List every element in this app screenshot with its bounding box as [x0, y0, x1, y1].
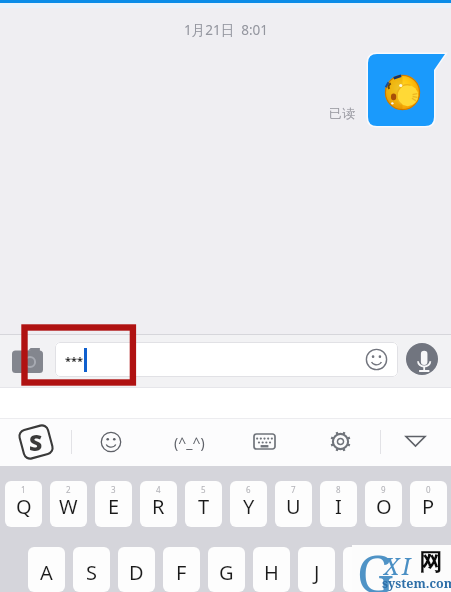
staticText: P	[422, 493, 435, 520]
button[interactable]: A	[28, 547, 65, 592]
staticText: K	[355, 559, 368, 586]
button[interactable]: Voice message	[406, 343, 438, 375]
staticText: J	[314, 559, 320, 586]
staticText: 9	[381, 484, 386, 495]
button[interactable]: 3	[95, 481, 132, 527]
staticText: A	[40, 559, 53, 586]
button[interactable]: L	[388, 547, 425, 592]
button[interactable]: Kaomoji	[164, 432, 214, 452]
button[interactable]: Settings	[329, 430, 352, 453]
staticText: 4	[156, 484, 161, 495]
button[interactable]: Emoji	[100, 431, 122, 453]
staticText: R	[152, 493, 165, 520]
button[interactable]: 8	[320, 481, 357, 527]
staticText: 已读	[329, 105, 355, 121]
staticText: system.com	[382, 575, 451, 592]
staticText: H	[264, 559, 279, 586]
staticText: W	[59, 493, 78, 520]
button[interactable]: 7	[275, 481, 312, 527]
button[interactable]: Sogou input	[20, 426, 52, 458]
staticText: F	[176, 559, 187, 586]
button[interactable]: Emoji	[365, 348, 388, 371]
staticText: Q	[16, 493, 32, 520]
staticText: 6	[246, 484, 251, 495]
staticText: 7	[291, 484, 296, 495]
staticText: G	[357, 538, 394, 592]
staticText: 5	[201, 484, 206, 495]
button[interactable]: 1	[5, 481, 42, 527]
button[interactable]: F	[163, 547, 200, 592]
staticText: U	[286, 493, 301, 520]
staticText: 1	[21, 484, 26, 495]
button[interactable]: Keyboard	[253, 433, 276, 450]
button[interactable]: K	[343, 547, 380, 592]
button[interactable]: J	[298, 547, 335, 592]
staticText: E	[108, 493, 120, 520]
button[interactable]: D	[118, 547, 155, 592]
staticText: G	[219, 559, 234, 586]
staticText: 1月21日 8:01	[184, 21, 268, 39]
staticText: I	[402, 550, 411, 581]
staticText: X	[384, 550, 400, 581]
staticText: 网	[419, 548, 442, 577]
button[interactable]: Sticker message	[368, 54, 445, 126]
staticText: D	[129, 559, 144, 586]
staticText: 3	[111, 484, 116, 495]
button[interactable]: Hide keyboard	[405, 434, 426, 448]
button[interactable]: 2	[50, 481, 87, 527]
button[interactable]: 4	[140, 481, 177, 527]
staticText: I	[335, 493, 342, 520]
button[interactable]: G	[208, 547, 245, 592]
button[interactable]: 0	[410, 481, 447, 527]
staticText: (^_^)	[174, 433, 205, 452]
button[interactable]: 5	[185, 481, 222, 527]
staticText: 8	[336, 484, 341, 495]
button[interactable]: 9	[365, 481, 402, 527]
staticText: S	[86, 559, 97, 586]
staticText: L	[401, 559, 412, 586]
staticText: ***	[65, 353, 83, 368]
button[interactable]: H	[253, 547, 290, 592]
button[interactable]: ***	[55, 342, 398, 377]
staticText: O	[376, 493, 392, 520]
staticText: 2	[66, 484, 71, 495]
button[interactable]: S	[73, 547, 110, 592]
staticText: Y	[243, 493, 255, 520]
staticText: T	[198, 493, 210, 520]
staticText: 0	[426, 484, 431, 495]
button[interactable]: Camera	[12, 348, 43, 373]
button[interactable]: 6	[230, 481, 267, 527]
staticText: S	[29, 426, 43, 457]
